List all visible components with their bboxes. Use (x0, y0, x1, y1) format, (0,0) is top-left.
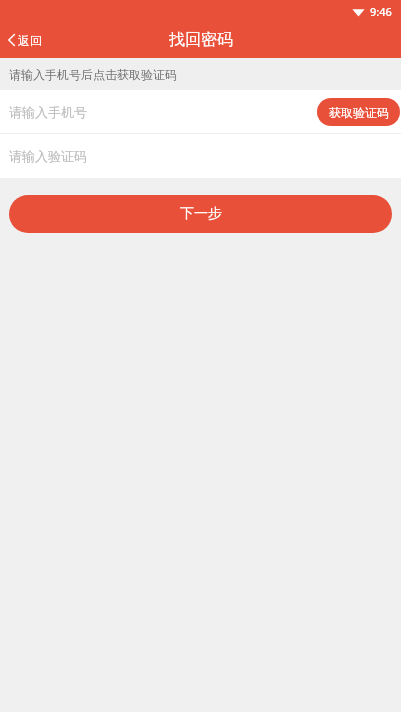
staticText: 请输入手机号后点击获取验证码 (9, 67, 177, 82)
staticText: 9:46 (370, 4, 392, 19)
staticText: 返回 (18, 33, 42, 48)
staticText: 下一步 (180, 205, 222, 223)
button[interactable]: 下一步 (9, 195, 392, 233)
button[interactable]: 获取验证码 (317, 98, 400, 126)
staticText: 找回密码 (169, 30, 233, 50)
staticText: 请输入手机号 (9, 104, 87, 120)
staticText: 请输入验证码 (9, 148, 87, 164)
staticText: 获取验证码 (329, 105, 389, 120)
button[interactable]: 返回 (0, 22, 52, 58)
